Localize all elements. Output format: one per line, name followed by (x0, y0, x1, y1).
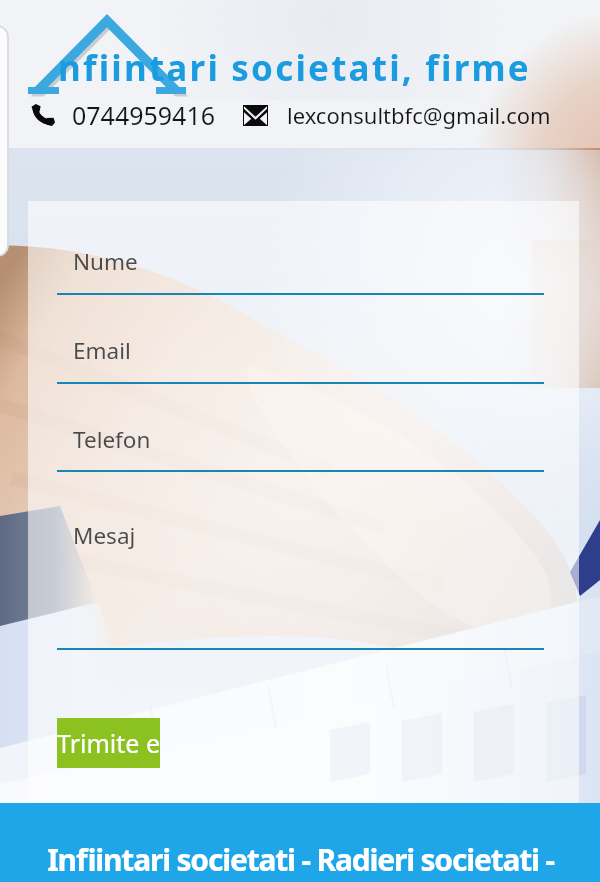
button[interactable]: Call 0744959416 (31, 98, 216, 132)
button[interactable]: Trimite email (57, 718, 160, 768)
other: Email lexconsultbfc@gmail.com (243, 105, 268, 126)
staticText: Mesaj (73, 520, 136, 551)
button[interactable]: Email lexconsultbfc@gmail.com (243, 100, 551, 130)
button[interactable]: Infiintari societati - Radieri societati… (0, 803, 600, 882)
staticText: Infiintari societati - Radieri societati… (47, 839, 554, 880)
staticText: lexconsultbfc@gmail.com (287, 100, 551, 130)
staticText: Trimite email (57, 726, 160, 760)
other: Call 0744959416 (31, 104, 55, 126)
staticText: Telefon (73, 424, 151, 455)
staticText: Nume (73, 246, 138, 277)
staticText: nfiintari societati, firme (58, 44, 531, 92)
staticText: 0744959416 (72, 98, 216, 132)
staticText: Email (73, 335, 131, 366)
